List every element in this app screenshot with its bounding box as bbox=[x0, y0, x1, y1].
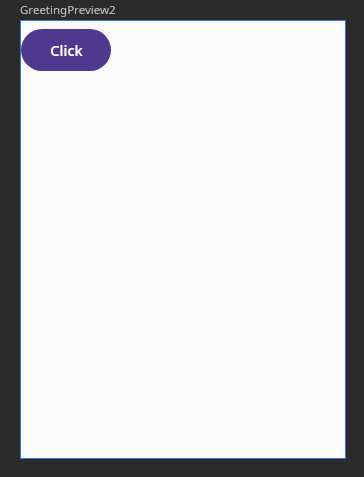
staticText: Click bbox=[50, 40, 83, 60]
button[interactable]: Click bbox=[21, 29, 111, 71]
staticText: GreetingPreview2 bbox=[20, 2, 116, 18]
